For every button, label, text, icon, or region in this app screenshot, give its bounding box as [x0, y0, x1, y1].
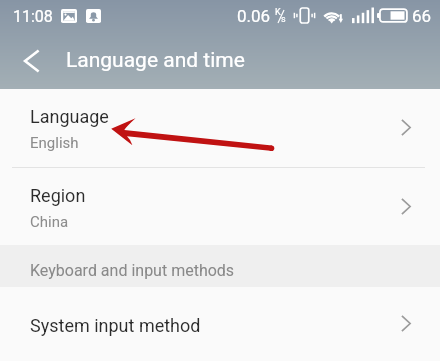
staticText: 11:08 [13, 7, 53, 26]
staticText: Region [30, 185, 86, 206]
staticText: K [275, 7, 281, 18]
button[interactable]: System input method [0, 287, 440, 361]
button[interactable]: Back [14, 43, 49, 78]
staticText: English [30, 134, 79, 152]
staticText: 66 [412, 6, 432, 26]
staticText: Keyboard and input methods [30, 261, 235, 280]
staticText: Language [30, 106, 109, 127]
staticText: Language and time [66, 48, 245, 73]
staticText: s [281, 14, 286, 25]
staticText: System input method [30, 315, 201, 336]
button[interactable]: Region [0, 168, 440, 245]
staticText: 0.06 [237, 6, 271, 26]
button[interactable]: Language [0, 89, 440, 167]
staticText: China [30, 213, 69, 231]
